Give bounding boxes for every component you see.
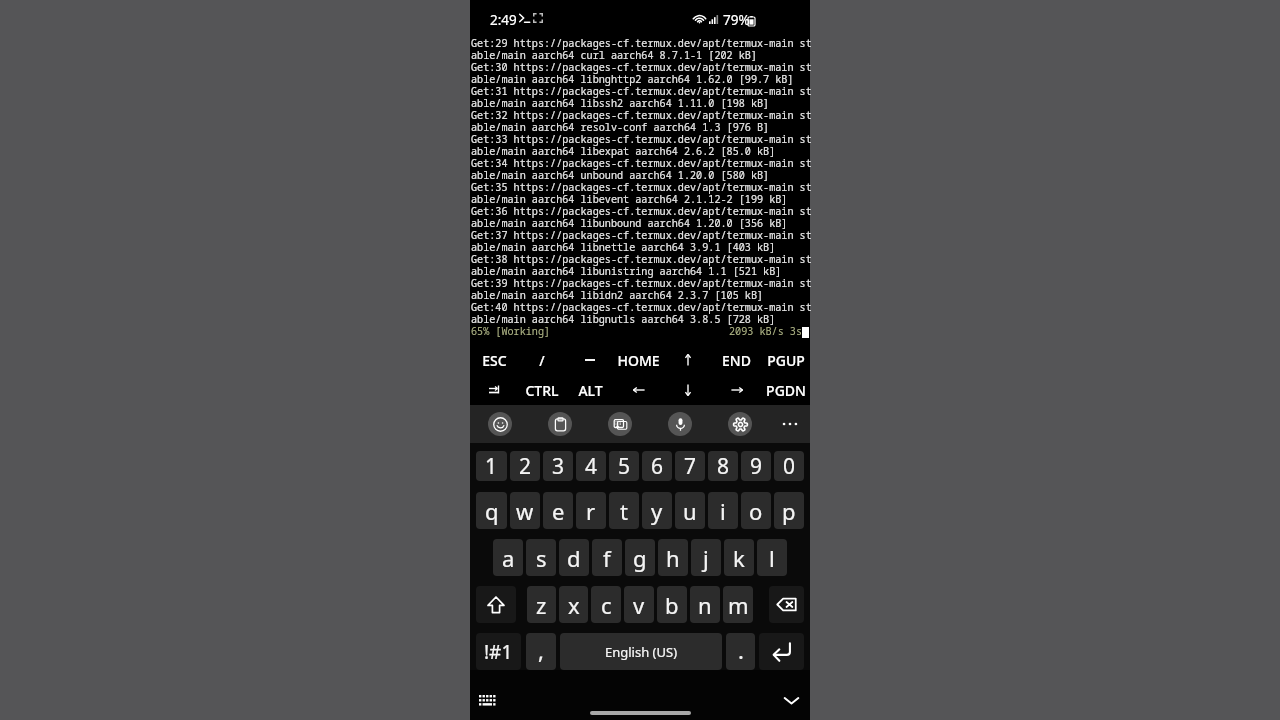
staticText: 79% [723,11,750,29]
staticText: 2 [519,452,532,481]
button[interactable]: 7 [675,451,705,481]
button[interactable]: z [527,586,556,623]
staticText: able/main aarch64 libunbound aarch64 1.2… [471,216,788,230]
staticText: u [683,496,697,526]
button[interactable]: CTRL [518,375,566,405]
button[interactable]: 8 [708,451,738,481]
button[interactable]: Switch keyboard [599,405,641,443]
staticText: 65% [Working] [471,324,551,338]
button[interactable]: 3 [543,451,573,481]
button[interactable]: e [543,492,573,529]
button[interactable]: DOWN [663,375,712,405]
staticText: Get:39 https://packages-cf.termux.dev/ap… [471,276,811,290]
button[interactable]: Shift [476,586,516,623]
button[interactable]: Settings [719,405,761,443]
button[interactable]: 1 [476,451,507,481]
button[interactable]: x [559,586,588,623]
button[interactable]: ESC [470,345,518,375]
button[interactable]: u [675,492,705,529]
button[interactable]: Voice input [659,405,701,443]
button[interactable]: DASH [566,345,614,375]
staticText: END [722,351,751,370]
button[interactable]: o [741,492,771,529]
staticText: g [633,543,647,573]
button[interactable]: / [518,345,566,375]
staticText: / [539,351,545,370]
button[interactable]: !#1 [476,633,521,670]
button[interactable]: j [691,539,721,576]
button[interactable]: d [559,539,589,576]
staticText: able/main aarch64 resolv-conf aarch64 1.… [471,120,770,134]
button[interactable]: m [723,586,753,623]
button[interactable]: i [708,492,738,529]
staticText: q [485,496,499,526]
staticText: v [633,590,645,620]
staticText: able/main aarch64 curl aarch64 8.7.1-1 [… [471,48,757,62]
button[interactable]: f [592,539,622,576]
button[interactable]: r [576,492,606,529]
button[interactable]: , [526,633,556,670]
button[interactable]: 4 [576,451,606,481]
staticText: h [666,543,680,573]
button[interactable]: b [657,586,687,623]
button[interactable]: UP [663,345,712,375]
staticText: j [703,543,709,573]
staticText: a [502,543,515,573]
button[interactable]: . [726,633,755,670]
button[interactable]: HOME [614,345,663,375]
button[interactable]: 0 [774,451,804,481]
staticText: PGUP [767,351,805,370]
button[interactable]: c [591,586,621,623]
staticText: p [782,496,796,526]
button[interactable]: 6 [642,451,672,481]
button[interactable]: a [493,539,523,576]
button[interactable]: LEFT [614,375,663,405]
button[interactable]: p [774,492,804,529]
button[interactable]: More options [769,405,811,443]
button[interactable]: l [757,539,787,576]
button[interactable]: TAB [470,375,518,405]
button[interactable]: h [658,539,688,576]
button[interactable]: Enter [759,633,804,670]
staticText: k [733,543,745,573]
staticText: Get:34 https://packages-cf.termux.dev/ap… [471,156,811,170]
staticText: l [769,543,775,573]
button[interactable]: END [712,345,761,375]
button[interactable]: Emoji [479,405,521,443]
button[interactable]: Change keyboard [471,684,503,716]
button[interactable]: 2 [510,451,540,481]
staticText: 4 [585,452,598,481]
staticText: able/main aarch64 libevent aarch64 2.1.1… [471,192,788,206]
staticText: 7 [684,452,697,481]
button[interactable]: Hide keyboard [775,684,807,716]
button[interactable]: Backspace [769,586,804,623]
button[interactable]: n [690,586,720,623]
button[interactable]: ALT [566,375,614,405]
button[interactable]: s [526,539,556,576]
button[interactable]: k [724,539,754,576]
staticText: b [665,590,679,620]
button[interactable]: v [624,586,654,623]
button[interactable]: English (US) [560,633,722,670]
staticText: able/main aarch64 libexpat aarch64 2.6.2… [471,144,776,158]
button[interactable]: Clipboard [539,405,581,443]
staticText: w [516,496,534,526]
button[interactable]: t [609,492,639,529]
staticText: ESC [482,351,507,370]
button[interactable]: 5 [609,451,639,481]
button[interactable]: g [625,539,655,576]
button[interactable]: w [510,492,540,529]
staticText: 5 [618,452,631,481]
button[interactable]: PGDN [761,375,810,405]
button[interactable]: RIGHT [712,375,761,405]
staticText: 2:49 [490,11,517,29]
staticText: able/main aarch64 libidn2 aarch64 2.3.7 … [471,288,764,302]
staticText: able/main aarch64 libunistring aarch64 1… [471,264,782,278]
button[interactable]: PGUP [761,345,810,375]
staticText: Get:29 https://packages-cf.termux.dev/ap… [471,36,811,50]
button[interactable]: y [642,492,672,529]
button[interactable]: 9 [741,451,771,481]
staticText: 0 [783,452,796,481]
button[interactable]: q [476,492,507,529]
staticText: able/main aarch64 libnettle aarch64 3.9.… [471,240,776,254]
